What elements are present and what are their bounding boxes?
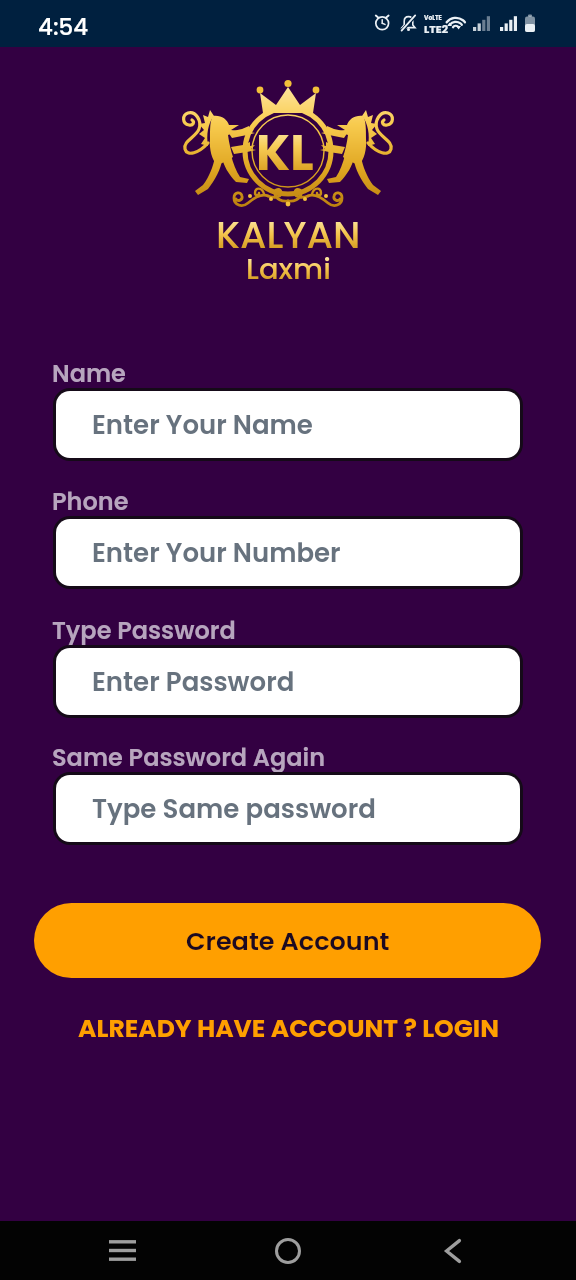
- staticText: Enter Your Number: [92, 535, 341, 571]
- staticText: Laxmi: [246, 249, 331, 290]
- staticText: Create Account: [186, 923, 390, 959]
- button[interactable]: Home: [248, 1221, 328, 1280]
- button[interactable]: Back: [413, 1221, 493, 1280]
- staticText: KL: [256, 119, 314, 188]
- staticText: LTE2: [424, 21, 448, 36]
- staticText: Enter Your Name: [92, 407, 313, 443]
- button[interactable]: Recent apps: [82, 1221, 162, 1280]
- staticText: Name: [52, 357, 126, 391]
- staticText: VoLTE: [424, 14, 442, 22]
- button[interactable]: Enter Your Name: [56, 391, 520, 458]
- staticText: Type Same password: [92, 791, 376, 827]
- button[interactable]: Create Account: [34, 903, 541, 978]
- staticText: Same Password Again: [52, 741, 326, 775]
- staticText: Enter Password: [92, 664, 295, 700]
- staticText: KALYAN: [216, 208, 361, 261]
- button[interactable]: Enter Password: [56, 648, 520, 715]
- staticText: 4:54: [38, 11, 89, 43]
- staticText: Type Password: [52, 614, 236, 648]
- staticText: Phone: [52, 485, 129, 519]
- staticText: ALREADY HAVE ACCOUNT ? LOGIN: [78, 1011, 499, 1046]
- button[interactable]: Enter Your Number: [56, 519, 520, 586]
- button[interactable]: Type Same password: [56, 775, 520, 842]
- button[interactable]: ALREADY HAVE ACCOUNT ? LOGIN: [0, 1005, 576, 1051]
